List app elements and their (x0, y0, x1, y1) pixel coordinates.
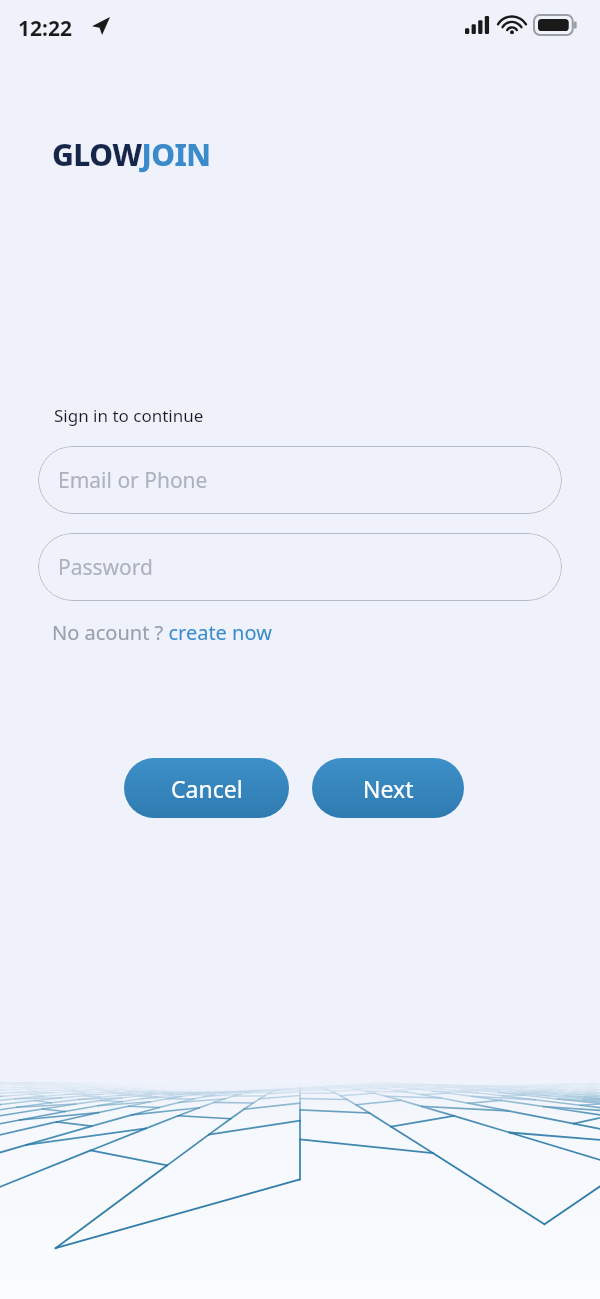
other: Battery full (534, 15, 578, 35)
other: Location active (92, 17, 110, 35)
staticText: Password (58, 553, 153, 582)
staticText: Next (363, 773, 414, 804)
staticText: Sign in to continue (54, 404, 204, 427)
button[interactable]: Next (312, 758, 464, 818)
button[interactable]: Password (38, 533, 562, 601)
staticText: GLOWJOIN (52, 134, 211, 175)
staticText: Email or Phone (58, 466, 208, 495)
staticText: No acount ? create now (52, 619, 272, 646)
staticText: Cancel (171, 773, 243, 804)
button[interactable]: GLOWJOIN (52, 134, 211, 175)
staticText: 12:22 (18, 14, 72, 43)
button[interactable]: Cancel (124, 758, 289, 818)
other: Wi-Fi (500, 16, 524, 34)
button[interactable]: Email or Phone (38, 446, 562, 514)
other: Cellular signal (465, 16, 491, 34)
button[interactable]: No acount ? create now (50, 617, 274, 648)
